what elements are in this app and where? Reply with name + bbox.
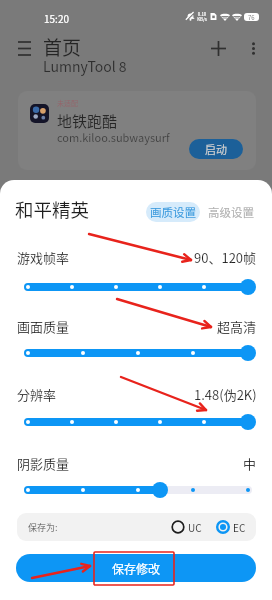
button[interactable]: 高级设置 bbox=[205, 202, 257, 222]
staticText: 保存为: bbox=[28, 521, 58, 534]
staticText: 保存修改 bbox=[112, 560, 161, 577]
staticText: 画质设置 bbox=[150, 204, 196, 221]
staticText: EC bbox=[233, 520, 246, 534]
button[interactable]: 阴影质量 bbox=[18, 480, 256, 500]
button[interactable]: EC bbox=[216, 520, 246, 534]
staticText: 76 bbox=[248, 13, 255, 21]
staticText: 启动 bbox=[205, 141, 227, 157]
button[interactable]: Menu bbox=[12, 36, 36, 60]
staticText: 画面质量 bbox=[17, 317, 70, 336]
button[interactable]: 画面质量 bbox=[18, 343, 256, 363]
staticText: 分辨率 bbox=[17, 385, 57, 404]
staticText: LumnyTool 8 bbox=[43, 56, 127, 76]
staticText: 和平精英 bbox=[15, 196, 90, 223]
staticText: 90、120帧 bbox=[194, 248, 257, 267]
staticText: 游戏帧率 bbox=[17, 248, 70, 267]
staticText: com.kiloo.subwaysurf bbox=[57, 129, 170, 145]
staticText: 超高清 bbox=[217, 317, 257, 336]
button[interactable]: 分辨率 bbox=[18, 412, 256, 432]
staticText: 未适配 bbox=[57, 98, 78, 108]
button[interactable]: Add bbox=[206, 36, 230, 60]
staticText: 地铁跑酷 bbox=[57, 110, 118, 132]
button[interactable]: 游戏帧率 bbox=[18, 277, 256, 297]
button[interactable]: More options bbox=[241, 36, 265, 60]
staticText: 0.10 KB/s bbox=[197, 11, 207, 22]
staticText: 首页 bbox=[43, 33, 82, 61]
staticText: 阴影质量 bbox=[17, 454, 70, 473]
staticText: 15:20 bbox=[44, 11, 69, 25]
staticText: 中 bbox=[243, 454, 257, 473]
button[interactable]: 画质设置 bbox=[146, 202, 200, 222]
button[interactable]: 启动 bbox=[189, 139, 243, 159]
button[interactable]: 保存修改 bbox=[16, 554, 256, 582]
button[interactable]: 未适配 bbox=[18, 91, 256, 170]
staticText: 高级设置 bbox=[208, 204, 254, 221]
button[interactable]: UC bbox=[171, 520, 202, 534]
staticText: UC bbox=[188, 520, 202, 534]
staticText: 1.48(伪2K) bbox=[194, 385, 257, 404]
